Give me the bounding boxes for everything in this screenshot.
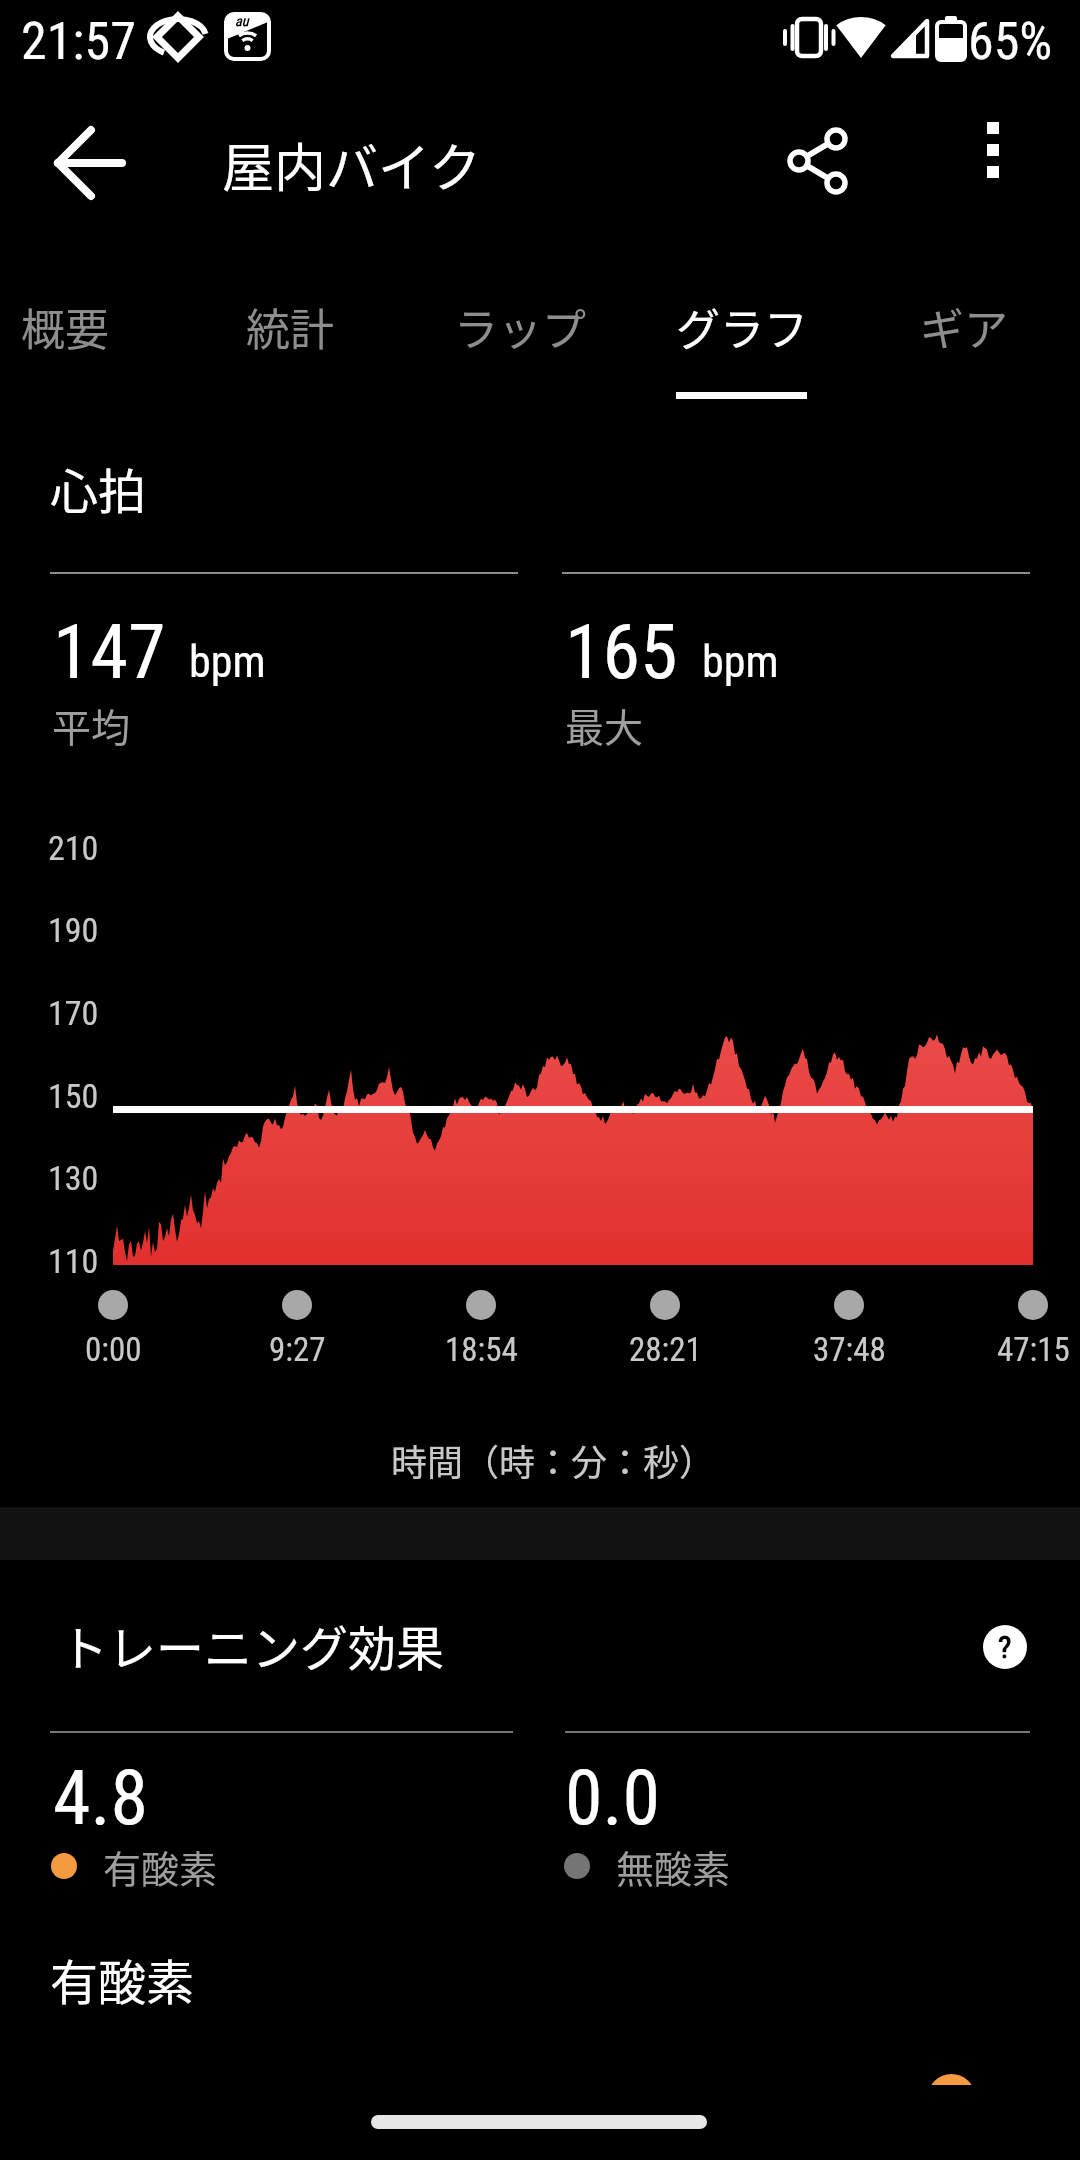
staticText: 0:00 — [85, 1330, 142, 1369]
button[interactable] — [768, 126, 868, 202]
staticText: 心拍 — [50, 453, 147, 523]
staticText: 最大 — [565, 697, 644, 753]
staticText: グラフ — [676, 295, 808, 359]
button[interactable] — [48, 121, 132, 205]
button[interactable]: ? — [983, 1625, 1027, 1669]
staticText: ギア — [920, 295, 1008, 359]
staticText: 有酸素 — [103, 1839, 218, 1894]
staticText: 屋内バイク — [222, 127, 481, 202]
staticText: ? — [998, 1628, 1012, 1666]
staticText: 130 — [48, 1158, 99, 1198]
staticText: ラップ — [454, 295, 586, 359]
staticText: 65% — [968, 11, 1053, 72]
staticText: トレーニング効果 — [60, 1610, 445, 1680]
button[interactable] — [951, 121, 1035, 205]
staticText: bpm — [702, 636, 779, 688]
staticText: 4.8 — [53, 1753, 149, 1842]
staticText: 統計 — [246, 295, 334, 359]
button[interactable]: ギア — [859, 262, 1069, 392]
staticText: 時間（時：分：秒） — [391, 1434, 716, 1486]
staticText: 28:21 — [629, 1330, 702, 1369]
staticText: au — [235, 13, 249, 29]
button[interactable]: 統計 — [185, 262, 395, 392]
staticText: 18:54 — [445, 1330, 518, 1369]
staticText: 170 — [48, 993, 99, 1033]
staticText: 147 — [53, 607, 166, 696]
staticText: 21:57 — [21, 11, 136, 72]
staticText: bpm — [189, 636, 266, 688]
staticText: 有酸素 — [50, 1944, 195, 2014]
button[interactable]: ラップ — [415, 262, 625, 392]
staticText: 210 — [48, 828, 99, 868]
staticText: 無酸素 — [616, 1839, 731, 1894]
staticText: 0.0 — [565, 1753, 661, 1842]
staticText: 165 — [565, 607, 678, 696]
button[interactable]: グラフ — [637, 262, 847, 392]
staticText: 37:48 — [813, 1330, 886, 1369]
staticText: 概要 — [21, 295, 109, 359]
staticText: 110 — [48, 1241, 99, 1281]
staticText: 150 — [48, 1076, 99, 1116]
staticText: 190 — [48, 910, 99, 950]
button[interactable]: 概要 — [0, 262, 170, 392]
staticText: 9:27 — [269, 1330, 326, 1369]
staticText: 平均 — [52, 697, 131, 753]
staticText: 47:15 — [997, 1330, 1070, 1369]
